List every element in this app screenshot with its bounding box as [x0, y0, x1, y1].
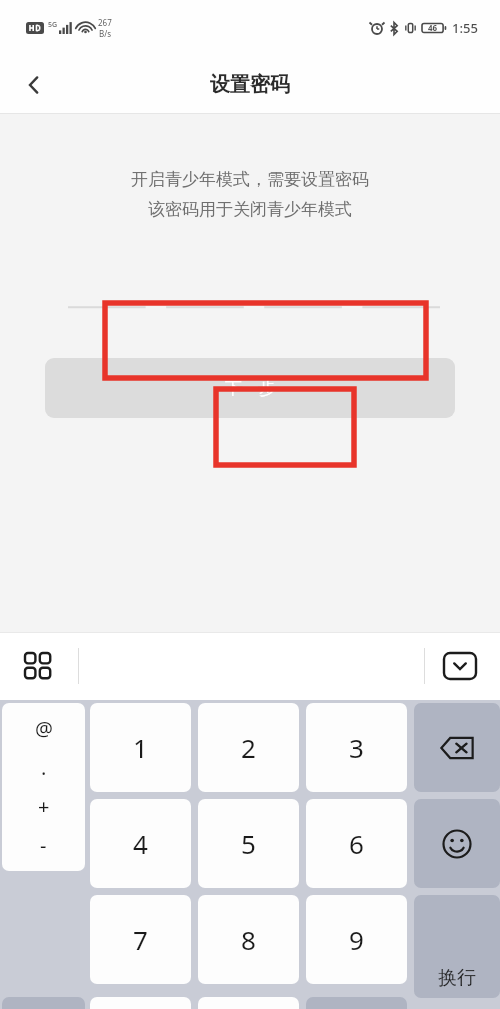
- staticText: 设置密码: [210, 72, 290, 97]
- staticText: 开启青少年模式，需要设置密码: [0, 169, 500, 190]
- button[interactable]: 下一步: [45, 358, 455, 418]
- button[interactable]: 井号: [306, 997, 407, 1009]
- button[interactable]: 表情: [414, 799, 500, 888]
- staticText: 5: [241, 826, 256, 861]
- button[interactable]: 7: [90, 895, 191, 984]
- staticText: -: [40, 832, 47, 859]
- button[interactable]: 4: [90, 799, 191, 888]
- button[interactable]: @: [2, 703, 85, 871]
- button[interactable]: 返回: [10, 61, 58, 109]
- staticText: 换行: [438, 966, 476, 990]
- staticText: 下一步: [225, 378, 276, 399]
- button[interactable]: 8: [198, 895, 299, 984]
- button[interactable]: 密码输入框: [0, 273, 500, 333]
- staticText: .: [41, 754, 47, 781]
- staticText: 5G: [48, 20, 58, 30]
- button[interactable]: 删除: [414, 703, 500, 792]
- button[interactable]: 零: [198, 997, 299, 1009]
- staticText: 1: [133, 730, 148, 765]
- button[interactable]: 符号切换: [2, 997, 85, 1009]
- staticText: 7: [133, 922, 148, 957]
- staticText: 9: [349, 922, 364, 957]
- staticText: @: [35, 715, 53, 742]
- button[interactable]: 键盘布局切换: [12, 640, 64, 692]
- button[interactable]: 星号: [90, 997, 191, 1009]
- staticText: 4: [133, 826, 148, 861]
- staticText: 该密码用于关闭青少年模式: [0, 199, 500, 220]
- staticText: +: [38, 793, 50, 820]
- staticText: 6: [349, 826, 364, 861]
- staticText: 8: [241, 922, 256, 957]
- staticText: B/s: [99, 28, 112, 39]
- staticText: 1:55: [452, 19, 478, 37]
- staticText: 2: [241, 730, 256, 765]
- button[interactable]: 2: [198, 703, 299, 792]
- button[interactable]: 9: [306, 895, 407, 984]
- staticText: 46: [428, 22, 438, 33]
- button[interactable]: 换行: [414, 895, 500, 998]
- button[interactable]: 3: [306, 703, 407, 792]
- button[interactable]: 6: [306, 799, 407, 888]
- staticText: 3: [349, 730, 364, 765]
- staticText: 267: [98, 17, 112, 28]
- button[interactable]: 5: [198, 799, 299, 888]
- button[interactable]: 收起键盘: [434, 640, 486, 692]
- button[interactable]: 1: [90, 703, 191, 792]
